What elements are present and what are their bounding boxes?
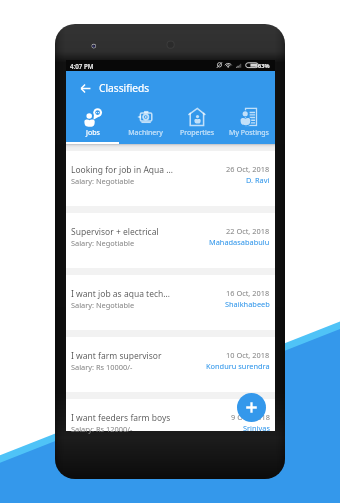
- button[interactable]: Supervisor + electrical: [66, 213, 275, 268]
- button[interactable]: Add new posting: [237, 393, 266, 422]
- staticText: 9 Oct, 2018: [231, 412, 270, 422]
- button[interactable]: I want job as aqua tech…: [66, 275, 275, 330]
- button[interactable]: Back: [77, 80, 93, 96]
- button[interactable]: My Postings: [223, 105, 275, 144]
- button[interactable]: I want feeders farm boys: [66, 399, 275, 431]
- staticText: I want job as aqua tech…: [71, 288, 171, 300]
- staticText: Classifieds: [99, 81, 150, 95]
- staticText: Shaikhabeeb: [225, 299, 270, 309]
- staticText: Salary: Rs 12000/-: [71, 424, 133, 434]
- staticText: Salary: Negotiable: [71, 238, 135, 248]
- button[interactable]: Properties: [171, 105, 223, 144]
- staticText: Machinery: [128, 128, 163, 138]
- staticText: Supervisor + electrical: [71, 226, 159, 238]
- staticText: I want farm supervisor: [71, 350, 162, 362]
- staticText: Salary: Negotiable: [71, 300, 135, 310]
- staticText: 22 Oct, 2018: [226, 226, 270, 236]
- staticText: 4:07 PM: [70, 62, 94, 70]
- staticText: Looking for job in Aqua …: [71, 164, 173, 176]
- button[interactable]: I want farm supervisor: [66, 337, 275, 392]
- staticText: D. Ravi: [246, 175, 270, 185]
- button[interactable]: Jobs: [66, 105, 119, 144]
- button[interactable]: Looking for job in Aqua …: [66, 151, 275, 206]
- staticText: 63%: [258, 62, 270, 70]
- staticText: Salary: Negotiable: [71, 176, 135, 186]
- button[interactable]: Machinery: [119, 105, 171, 144]
- staticText: Mahadasababulu: [209, 237, 270, 247]
- staticText: Srinivas: [243, 423, 270, 433]
- staticText: Konduru surendra: [206, 361, 270, 371]
- staticText: 16 Oct, 2018: [226, 288, 270, 298]
- staticText: 26 Oct, 2018: [226, 164, 270, 174]
- staticText: 10 Oct, 2018: [226, 350, 270, 360]
- staticText: Jobs: [86, 128, 100, 138]
- staticText: My Postings: [229, 128, 269, 138]
- staticText: I want feeders farm boys: [71, 412, 171, 424]
- staticText: Properties: [180, 128, 214, 138]
- staticText: Salary: Rs 10000/-: [71, 362, 133, 372]
